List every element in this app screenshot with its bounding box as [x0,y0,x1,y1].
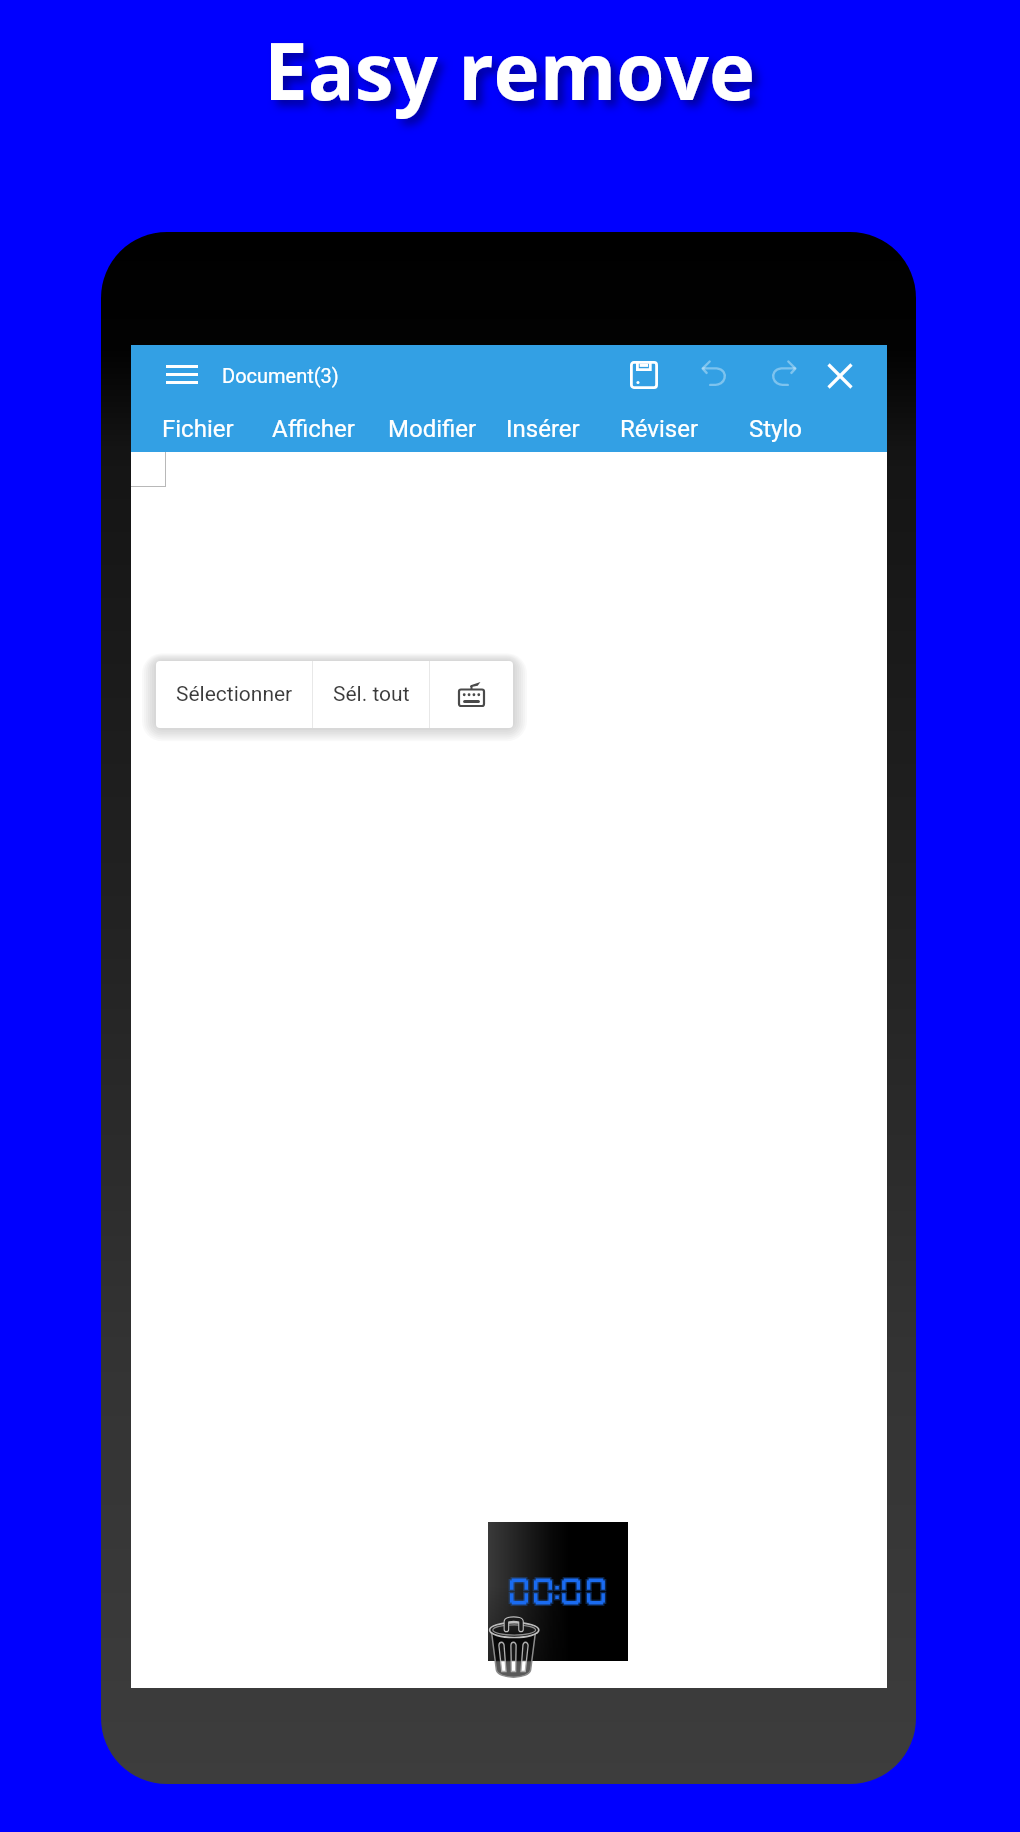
staticText: Insérer [506,415,580,443]
staticText: Stylo [749,415,802,443]
button[interactable]: Fichier [149,405,247,452]
staticText: Sélectionner [176,682,293,707]
button[interactable]: Sél. tout [313,661,429,728]
button[interactable]: Modifier [375,405,489,452]
staticText: Réviser [620,415,699,443]
button[interactable]: Hide keyboard [430,661,513,728]
button[interactable]: Save [619,350,669,400]
button[interactable]: Sélectionner [156,661,312,728]
button[interactable]: Menu [158,350,206,398]
staticText: Fichier [162,415,234,443]
staticText: Afficher [272,415,355,443]
staticText: Document(3) [222,364,339,387]
button[interactable]: Réviser [606,405,712,452]
button[interactable]: Insérer [492,405,594,452]
button[interactable]: Undo [690,350,740,400]
button[interactable]: Afficher [260,405,366,452]
staticText: Modifier [388,415,477,443]
button[interactable]: Redo [758,350,808,400]
staticText: Sél. tout [333,682,410,707]
button[interactable]: Close [815,351,865,401]
button[interactable]: Stylo [730,405,821,452]
button[interactable]: Document(3) [222,345,339,405]
staticText: Easy remove [264,17,756,123]
